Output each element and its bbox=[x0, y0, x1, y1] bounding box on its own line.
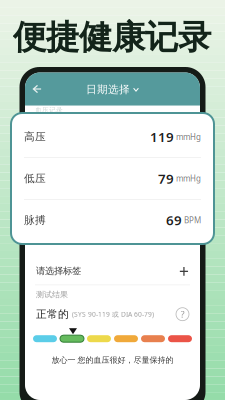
staticText: 测试结果 bbox=[36, 290, 68, 300]
staticText: BPM bbox=[182, 215, 201, 225]
button[interactable]: 高压 bbox=[11, 116, 214, 157]
staticText: 放心一 您的血压很好，尽量保持的 bbox=[51, 355, 173, 365]
staticText: 血压记录 bbox=[35, 106, 63, 114]
button[interactable]: 帮助 bbox=[176, 308, 189, 321]
staticText: 低压 bbox=[24, 172, 46, 185]
staticText: 脉搏 bbox=[24, 214, 46, 227]
staticText: 正常的 bbox=[36, 308, 69, 321]
button[interactable]: 返回 bbox=[26, 78, 48, 100]
staticText: (SYS 90-119 或 DIA 60-79) bbox=[72, 310, 154, 319]
button[interactable]: 低压 bbox=[11, 158, 214, 199]
staticText: ? bbox=[180, 308, 184, 320]
button[interactable]: 请选择标签 bbox=[25, 257, 200, 284]
staticText: 便捷健康记录 bbox=[13, 17, 211, 58]
button[interactable]: 日期选择 bbox=[25, 81, 200, 97]
staticText: 高压 bbox=[24, 130, 46, 143]
button[interactable]: 脉搏 bbox=[11, 200, 214, 241]
staticText: 日期选择 bbox=[86, 83, 130, 96]
staticText: 69 bbox=[166, 211, 182, 229]
staticText: + bbox=[179, 259, 189, 282]
staticText: 请选择标签 bbox=[36, 265, 81, 277]
staticText: mmHg bbox=[174, 173, 201, 184]
staticText: mmHg bbox=[174, 131, 201, 142]
staticText: 79 bbox=[158, 170, 174, 187]
staticText: 119 bbox=[150, 128, 174, 146]
